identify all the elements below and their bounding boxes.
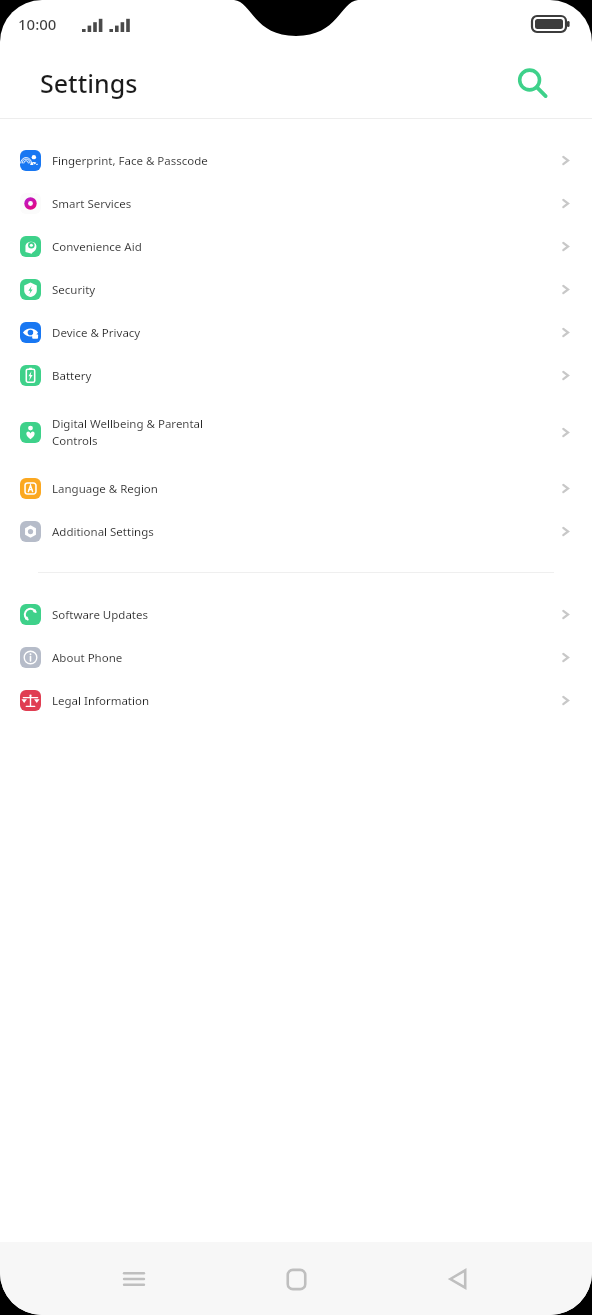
staticText: Digital Wellbeing & Parental Controls [52,416,559,449]
staticText: About Phone [52,650,559,666]
button[interactable]: Legal Information [0,679,592,722]
staticText: Language & Region [52,481,559,497]
staticText: Security [52,282,559,298]
button[interactable]: Back [430,1251,486,1307]
staticText: Software Updates [52,607,559,623]
button[interactable]: Smart Services [0,182,592,225]
staticText: Device & Privacy [52,325,559,341]
button[interactable]: Security [0,268,592,311]
staticText: Battery [52,368,559,384]
button[interactable]: Search [510,61,554,105]
button[interactable]: Additional Settings [0,510,592,553]
button[interactable]: Device & Privacy [0,311,592,354]
button[interactable]: Home [268,1251,324,1307]
button[interactable]: Convenience Aid [0,225,592,268]
staticText: 10:00 [18,14,57,34]
staticText: Additional Settings [52,524,559,540]
button[interactable]: Software Updates [0,593,592,636]
staticText: Convenience Aid [52,239,559,255]
button[interactable]: Battery [0,354,592,397]
staticText: Fingerprint, Face & Passcode [52,153,559,169]
button[interactable]: Fingerprint, Face & Passcode [0,139,592,182]
button[interactable]: Language & Region [0,467,592,510]
staticText: Settings [40,66,138,100]
staticText: Legal Information [52,693,559,709]
button[interactable]: Recent apps [106,1251,162,1307]
staticText: Smart Services [52,196,559,212]
button[interactable]: Digital Wellbeing & Parental Controls [0,397,592,467]
button[interactable]: About Phone [0,636,592,679]
